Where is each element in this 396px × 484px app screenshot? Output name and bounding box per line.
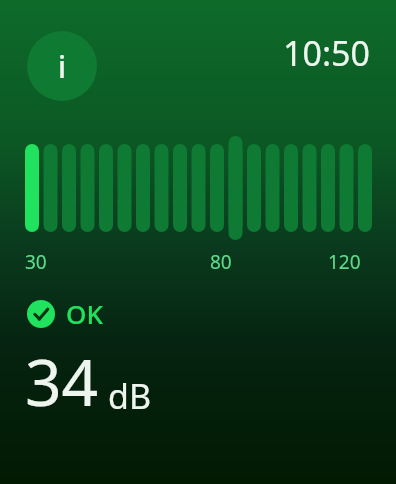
staticText: 30 bbox=[25, 249, 47, 275]
staticText: OK bbox=[66, 296, 103, 331]
button[interactable]: Info bbox=[27, 31, 97, 101]
staticText: i bbox=[58, 46, 67, 87]
staticText: 10:50 bbox=[283, 30, 370, 76]
staticText: 34 bbox=[25, 338, 99, 425]
staticText: 120 bbox=[328, 249, 361, 275]
button[interactable]: OK bbox=[27, 296, 103, 331]
staticText: dB bbox=[108, 373, 152, 419]
staticText: 80 bbox=[210, 249, 232, 275]
